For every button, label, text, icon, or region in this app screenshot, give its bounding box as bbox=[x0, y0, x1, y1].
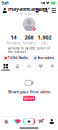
button[interactable]: Search bbox=[42, 6, 50, 15]
button[interactable]: Switch account bbox=[0, 6, 9, 15]
staticText: Your orders bbox=[38, 56, 54, 60]
button[interactable]: Your orders bbox=[32, 55, 56, 61]
staticText: Upload bbox=[23, 97, 34, 100]
button[interactable]: Saved bbox=[48, 63, 57, 70]
button[interactable]: Profile bbox=[46, 117, 57, 125]
button[interactable]: Friends bbox=[12, 117, 23, 125]
staticText: welcome to my little corner of the inter… bbox=[8, 47, 50, 54]
button[interactable]: Liked bbox=[36, 63, 45, 70]
staticText: Followers bbox=[22, 41, 35, 45]
staticText: Likes bbox=[41, 41, 47, 45]
button[interactable]: Videos bbox=[1, 63, 10, 70]
button[interactable]: Private bbox=[13, 63, 22, 70]
staticText: 268 bbox=[24, 34, 33, 41]
button[interactable]: 1,902 bbox=[37, 34, 52, 45]
button[interactable]: Create bbox=[23, 118, 35, 125]
button[interactable]: 14 bbox=[6, 34, 21, 45]
staticText: 9:41 bbox=[1, 0, 8, 6]
button[interactable]: Upload bbox=[23, 96, 35, 101]
staticText: 1,902 bbox=[37, 34, 51, 41]
staticText: Following bbox=[7, 41, 21, 45]
button[interactable]: Add friends bbox=[34, 6, 42, 15]
button[interactable]: Inbox bbox=[35, 117, 46, 125]
button[interactable]: Home bbox=[1, 117, 12, 125]
button[interactable]: Reposts bbox=[24, 63, 33, 70]
button[interactable]: TikTok Studio bbox=[2, 55, 30, 61]
staticText: Tap to add bio bbox=[19, 12, 39, 16]
staticText: mayaoncamera bbox=[8, 5, 47, 12]
staticText: 14 bbox=[11, 34, 17, 41]
staticText: Share your first video bbox=[8, 89, 50, 94]
button[interactable]: Menu bbox=[50, 6, 58, 15]
button[interactable]: 268 bbox=[21, 34, 36, 45]
staticText: TikTok Studio bbox=[8, 56, 28, 60]
